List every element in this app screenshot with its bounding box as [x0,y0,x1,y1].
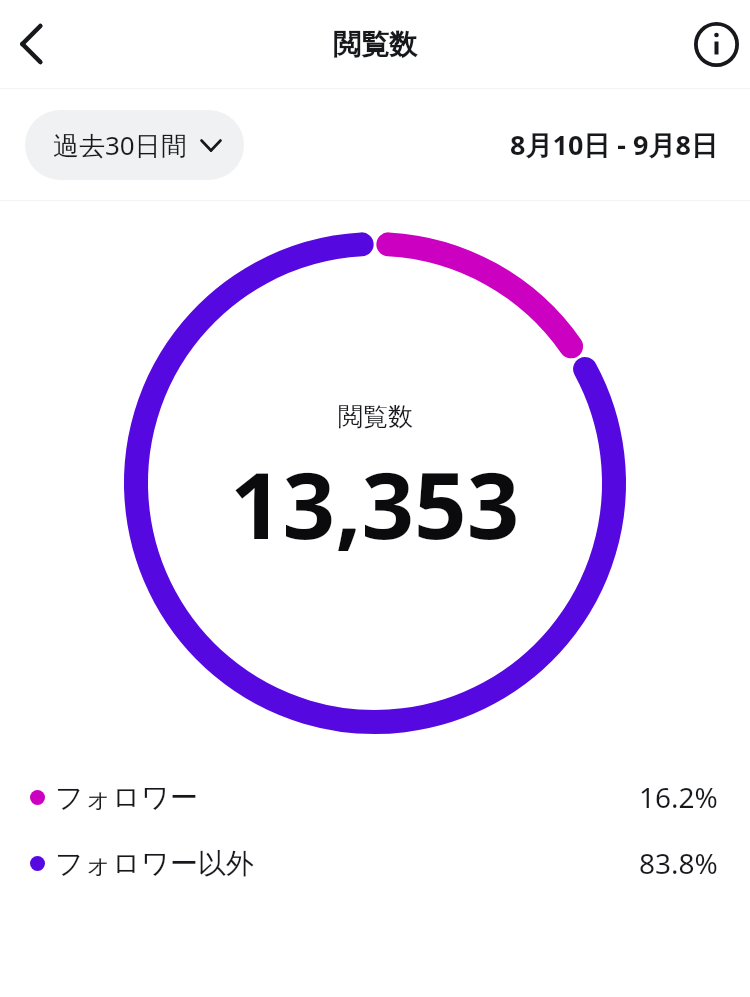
staticText: 13,353 [230,441,520,566]
staticText: 16.2% [639,778,718,816]
button[interactable]: Information [682,10,750,78]
button[interactable]: フォロワー [0,764,750,830]
staticText: フォロワー [55,780,198,815]
staticText: 83.8% [639,844,718,882]
staticText: フォロワー以外 [55,846,254,881]
button[interactable]: フォロワー以外 [0,830,750,896]
button[interactable]: 過去30日間 [25,110,244,180]
staticText: 閲覧数 [333,27,417,62]
button[interactable]: Back [0,12,64,76]
staticText: 8月10日 - 9月8日 [510,126,718,163]
staticText: 閲覧数 [338,401,413,432]
staticText: 過去30日間 [53,127,187,163]
